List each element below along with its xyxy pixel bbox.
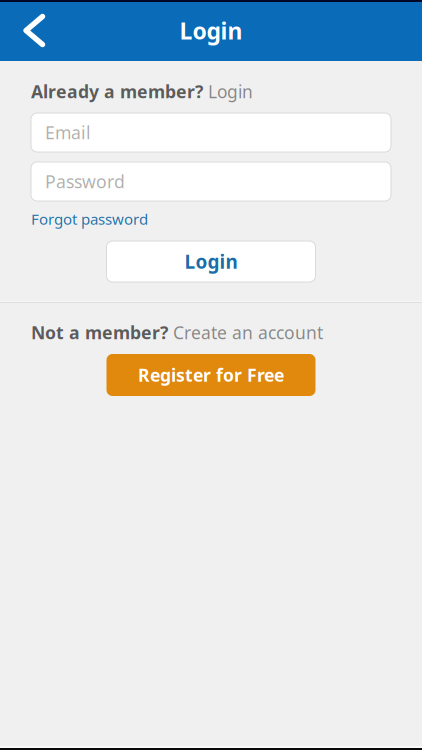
button[interactable]: Back [0, 6, 46, 54]
staticText: Already a member? [31, 79, 203, 103]
button[interactable]: Password [31, 162, 391, 201]
button[interactable]: Register for Free [106, 354, 315, 396]
button[interactable]: Forgot password [0, 201, 156, 231]
staticText: Password [45, 169, 125, 193]
button[interactable]: Email [31, 113, 391, 152]
staticText: Not a member? [31, 320, 168, 344]
staticText: Login [179, 15, 242, 46]
staticText: Email [45, 120, 91, 144]
staticText: Login [184, 249, 237, 274]
staticText: Login [208, 80, 253, 103]
button[interactable]: Login [106, 241, 315, 282]
staticText: Register for Free [138, 363, 284, 387]
staticText: Forgot password [31, 209, 148, 229]
staticText: Create an account [173, 321, 323, 344]
